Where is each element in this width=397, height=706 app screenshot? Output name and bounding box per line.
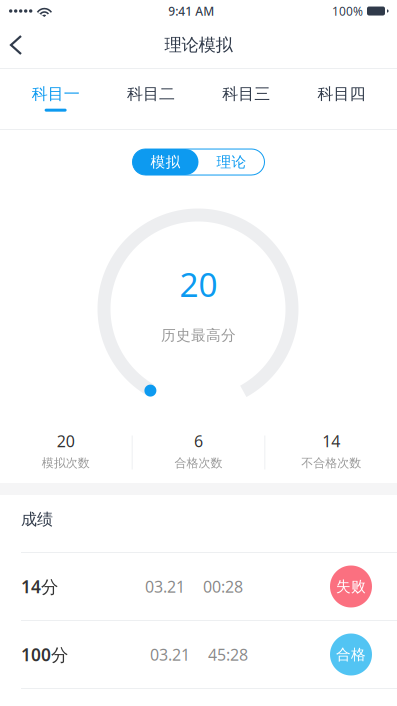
button[interactable]: 理论 <box>198 149 264 175</box>
staticText: 03.21 <box>145 576 185 597</box>
staticText: 合格次数 <box>174 456 222 470</box>
staticText: 理论 <box>216 153 246 171</box>
button[interactable]: 14分 <box>0 553 397 621</box>
button[interactable]: Back <box>0 23 41 67</box>
staticText: 失败 <box>336 577 366 595</box>
staticText: 20 <box>179 262 217 306</box>
staticText: 科目三 <box>222 84 270 104</box>
staticText: 6 <box>194 430 203 452</box>
staticText: 20 <box>57 430 75 452</box>
button[interactable]: 科目一 <box>8 69 103 129</box>
staticText: 模拟次数 <box>42 456 90 470</box>
staticText: 科目四 <box>317 84 365 104</box>
button[interactable]: 科目四 <box>294 69 389 129</box>
staticText: 14分 <box>21 575 58 598</box>
staticText: 100分 <box>21 643 68 666</box>
button[interactable]: 科目三 <box>198 69 294 129</box>
staticText: 45:28 <box>208 644 248 665</box>
staticText: 科目一 <box>32 84 80 104</box>
staticText: 模拟 <box>150 153 180 171</box>
staticText: 合格 <box>336 645 366 663</box>
staticText: 理论模拟 <box>164 34 232 56</box>
staticText: 9:41 AM <box>168 3 214 19</box>
button[interactable]: 科目二 <box>103 69 198 129</box>
staticText: 不合格次数 <box>301 456 361 470</box>
staticText: 科目二 <box>127 84 175 104</box>
staticText: 03.21 <box>150 644 190 665</box>
staticText: 成绩 <box>21 510 53 529</box>
staticText: 历史最高分 <box>161 326 236 344</box>
staticText: 100% <box>332 3 363 19</box>
staticText: 00:28 <box>203 576 243 597</box>
button[interactable]: 模拟 <box>132 149 198 175</box>
button[interactable]: 100分 <box>0 621 397 689</box>
staticText: 14 <box>322 430 340 452</box>
